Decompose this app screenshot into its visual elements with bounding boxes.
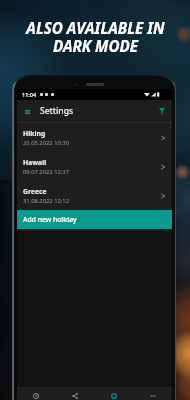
staticText: 11:04 (22, 91, 37, 98)
staticText: 20.05.2022 10:30 (23, 139, 69, 147)
button[interactable]: Add new holiday (17, 210, 172, 229)
button[interactable]: Hiking (17, 123, 172, 152)
button[interactable]: Share (55, 387, 94, 400)
staticText: 09.07.2022 12:37 (23, 168, 69, 176)
staticText: Hiking (23, 129, 46, 138)
button[interactable]: Recent apps (17, 387, 55, 400)
button[interactable]: Hawaii (17, 152, 172, 181)
staticText: ALSO AVAILABLE IN DARK MODE (26, 18, 165, 56)
staticText: 31.08.2022 12:12 (23, 197, 69, 205)
staticText: Settings (40, 105, 74, 117)
button[interactable]: More (133, 387, 172, 400)
staticText: Add new holiday (23, 215, 77, 224)
button[interactable]: Open navigation menu (21, 105, 34, 118)
staticText: Greece (23, 187, 47, 196)
button[interactable]: Filter (156, 105, 168, 117)
staticText: Hawaii (23, 158, 47, 167)
button[interactable]: Greece (17, 181, 172, 210)
button[interactable]: Home (94, 387, 133, 400)
